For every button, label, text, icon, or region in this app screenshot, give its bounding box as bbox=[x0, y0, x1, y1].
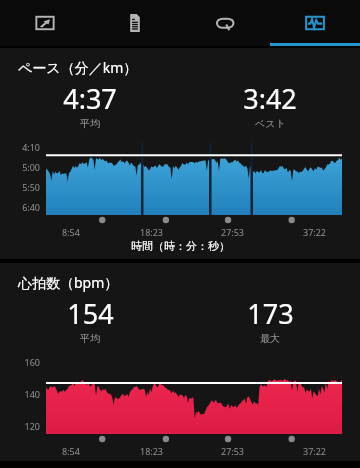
staticText: ベスト bbox=[255, 117, 286, 130]
staticText: 27:53 bbox=[221, 445, 245, 457]
button[interactable]: ペース（分／km） bbox=[0, 48, 360, 259]
staticText: 5:00 bbox=[6, 161, 40, 173]
staticText: 18:23 bbox=[140, 445, 164, 457]
staticText: 5:50 bbox=[6, 181, 40, 193]
button[interactable]: Laps bbox=[180, 0, 270, 46]
staticText: 4:37 bbox=[63, 80, 117, 117]
staticText: 心拍数（bpm） bbox=[18, 273, 119, 292]
staticText: 4:10 bbox=[6, 141, 40, 153]
staticText: 最大 bbox=[260, 332, 280, 345]
staticText: 時間（時：分：秒） bbox=[131, 239, 230, 253]
staticText: 8:54 bbox=[62, 226, 80, 238]
staticText: 平均 bbox=[80, 332, 100, 345]
staticText: 154 bbox=[67, 295, 114, 332]
staticText: 3:42 bbox=[243, 80, 297, 117]
button[interactable]: Charts bbox=[270, 0, 360, 46]
button[interactable]: Activity details bbox=[90, 0, 180, 46]
staticText: 160 bbox=[6, 356, 40, 368]
staticText: 37:22 bbox=[303, 445, 327, 457]
button[interactable]: 心拍数（bpm） bbox=[0, 263, 360, 461]
staticText: 37:22 bbox=[303, 226, 327, 238]
staticText: 140 bbox=[6, 388, 40, 400]
staticText: 18:23 bbox=[140, 226, 164, 238]
staticText: ペース（分／km） bbox=[18, 58, 138, 77]
staticText: 平均 bbox=[80, 117, 100, 130]
staticText: 173 bbox=[247, 295, 294, 332]
staticText: 6:40 bbox=[6, 201, 40, 213]
staticText: 27:53 bbox=[221, 226, 245, 238]
staticText: 8:54 bbox=[62, 445, 80, 457]
button[interactable]: Map route bbox=[0, 0, 90, 46]
staticText: 120 bbox=[6, 420, 40, 432]
